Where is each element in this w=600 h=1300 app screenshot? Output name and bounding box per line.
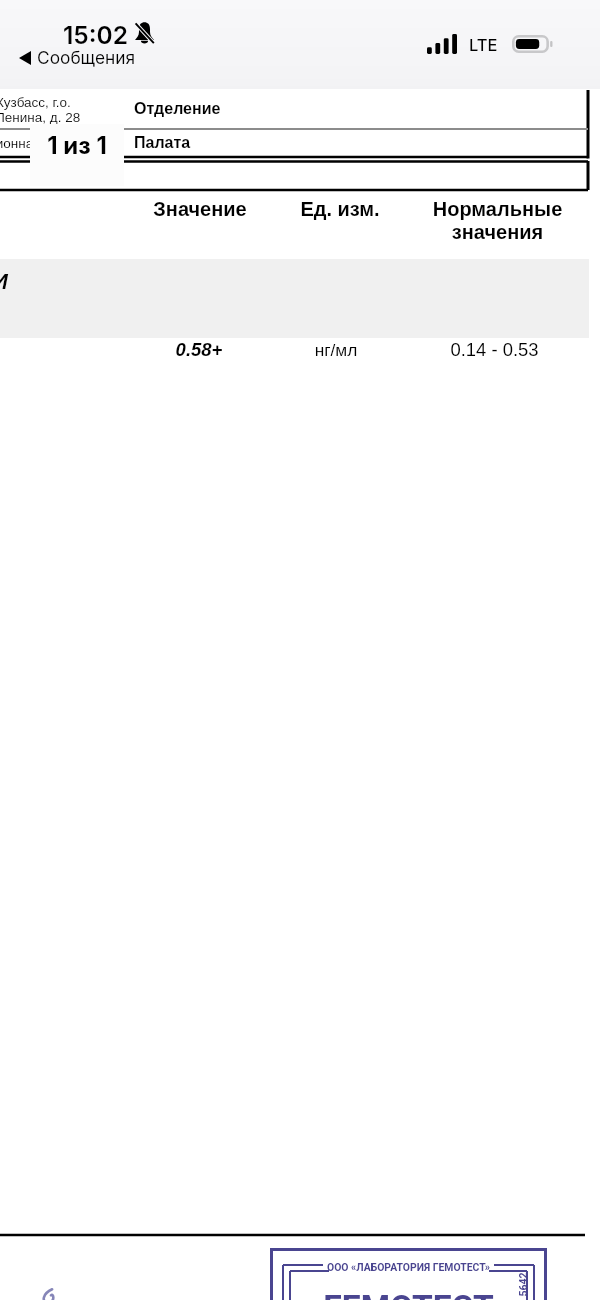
- staticText: 1 из 1: [30, 131, 124, 160]
- staticText: Отделение: [134, 100, 221, 118]
- staticText: LTE: [469, 35, 498, 55]
- other: Silent mode: [135, 22, 154, 44]
- other: Cellular signal: [427, 34, 457, 54]
- button[interactable]: 1 из 1: [30, 124, 124, 186]
- staticText: 0.14 - 0.53: [416, 339, 573, 360]
- staticText: Ленина, д. 28: [0, 110, 81, 125]
- staticText: Сообщения: [37, 47, 136, 68]
- staticText: ГЕМОТЕСТ: [270, 1288, 547, 1300]
- staticText: 0.58+: [129, 339, 269, 360]
- staticText: Нормальные значения: [419, 198, 576, 243]
- staticText: 5642: [516, 1271, 528, 1296]
- staticText: И: [0, 269, 8, 294]
- staticText: ООО «ЛАБОРАТОРИЯ ГЕМОТЕСТ»: [270, 1261, 547, 1273]
- other: Battery: [512, 35, 554, 53]
- staticText: Палата: [134, 134, 191, 152]
- staticText: Кузбасс, г.о.: [0, 95, 71, 110]
- button[interactable]: Сообщения: [19, 47, 136, 68]
- staticText: Значение: [130, 198, 270, 220]
- staticText: нг/мл: [276, 340, 396, 359]
- staticText: 15:02: [63, 20, 129, 50]
- staticText: ционна: [0, 136, 34, 151]
- staticText: Ед. изм.: [280, 198, 400, 220]
